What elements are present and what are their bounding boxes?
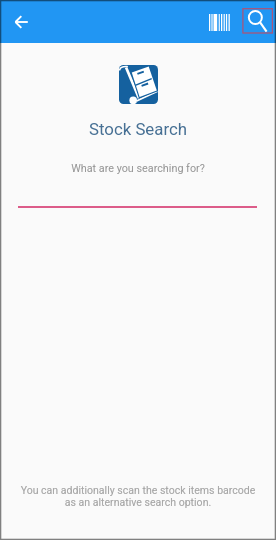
button[interactable]: Scan barcode [202,8,236,36]
staticText: What are you searching for? [0,162,276,175]
staticText: You can additionally scan the stock item… [6,484,270,508]
button[interactable]: Search [242,8,272,33]
button[interactable]: Navigate up [8,9,34,35]
staticText: Stock Search [0,119,276,139]
